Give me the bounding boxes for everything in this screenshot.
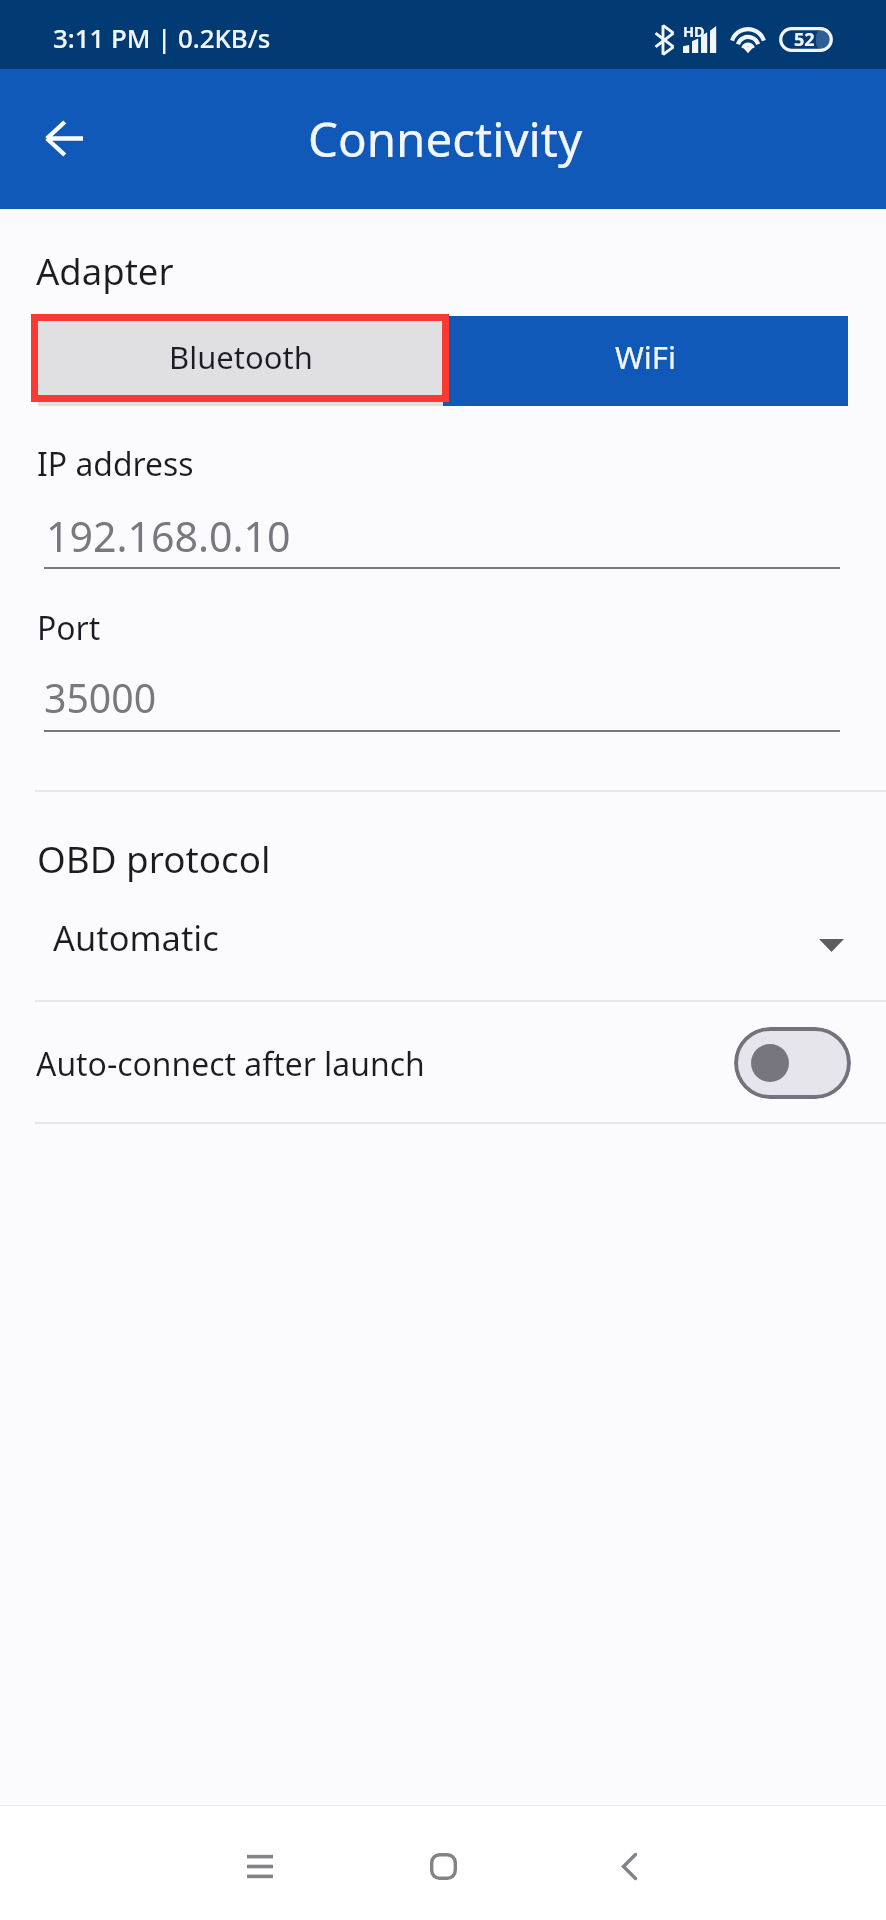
staticText: Connectivity: [308, 106, 583, 171]
button[interactable]: WiFi: [443, 316, 848, 406]
button[interactable]: 192.168.0.10: [44, 500, 840, 569]
staticText: 192.168.0.10: [46, 508, 291, 564]
staticText: IP address: [37, 442, 194, 485]
button[interactable]: Home: [388, 1814, 498, 1918]
button[interactable]: Bluetooth: [38, 316, 443, 406]
staticText: WiFi: [615, 336, 676, 378]
staticText: HD: [683, 21, 705, 41]
button[interactable]: Back: [574, 1814, 684, 1918]
staticText: Bluetooth: [169, 336, 313, 378]
staticText: Port: [37, 606, 101, 649]
button[interactable]: 35000: [44, 663, 840, 732]
staticText: 52: [794, 27, 815, 52]
button[interactable]: Automatic: [0, 898, 886, 988]
staticText: Auto-connect after launch: [36, 1042, 425, 1085]
button[interactable]: Back: [18, 92, 110, 184]
staticText: OBD protocol: [37, 834, 271, 884]
staticText: 3:11 PM | 0.2KB/s: [53, 20, 271, 55]
staticText: 35000: [44, 671, 157, 724]
button[interactable]: Auto-connect after launch: [0, 1002, 886, 1123]
staticText: Automatic: [53, 914, 219, 961]
button[interactable]: [734, 1027, 851, 1099]
staticText: Adapter: [36, 246, 174, 296]
button[interactable]: Recents: [205, 1814, 315, 1918]
